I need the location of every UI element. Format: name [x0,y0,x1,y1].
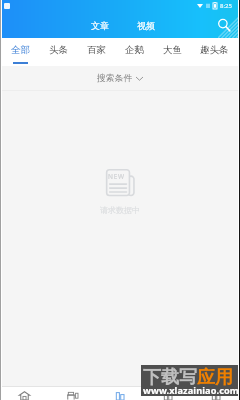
button[interactable]: 搜索条件 [89,70,151,87]
button[interactable]: 大鱼 [153,38,191,66]
staticText: 请求数据中 [100,205,140,215]
staticText: www.xlazainiao.com [143,384,239,397]
button[interactable]: Discover [96,386,144,400]
staticText: 下载写 [143,366,197,389]
staticText: 搜索条件 [97,73,133,84]
button[interactable]: 百家 [77,38,115,66]
button[interactable]: 文章 [85,16,115,35]
staticText: 文章 [91,20,109,31]
button[interactable]: 企鹅 [115,38,153,66]
staticText: 8:25 [220,2,232,10]
staticText: 全部 [11,44,30,56]
button[interactable]: Tools [48,386,96,400]
staticText: 应用 [197,366,233,389]
staticText: 大鱼 [163,44,182,56]
staticText: 视频 [137,20,155,31]
staticText: 企鹅 [125,44,144,56]
staticText: NEW [108,172,125,181]
button[interactable]: 头条 [39,38,77,66]
button[interactable]: Home [0,386,48,400]
button[interactable]: Profile [192,386,240,400]
staticText: 头条 [49,44,68,56]
button[interactable]: Messages [144,386,192,400]
staticText: 百家 [87,44,106,56]
button[interactable]: 趣头条 [191,38,238,66]
staticText: 趣头条 [200,44,229,56]
button[interactable]: Search [212,13,236,37]
button[interactable]: 视频 [131,16,161,35]
button[interactable]: 全部 [2,38,39,66]
